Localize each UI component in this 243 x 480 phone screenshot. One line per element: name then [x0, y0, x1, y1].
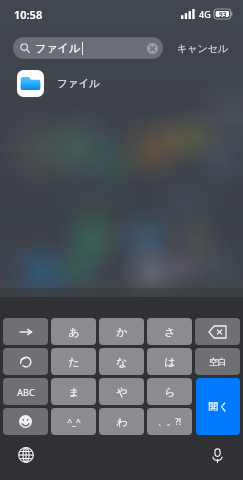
button[interactable]: や	[99, 378, 144, 405]
button[interactable]: Switch keyboard	[13, 442, 39, 468]
button[interactable]: ファイル	[13, 37, 163, 59]
staticText: 4G	[199, 8, 211, 20]
staticText: キャンセル	[177, 42, 229, 55]
staticText: か	[116, 325, 128, 339]
staticText: ファイル	[35, 41, 81, 55]
button[interactable]: さ	[147, 318, 192, 345]
button[interactable]: な	[99, 348, 144, 375]
staticText: ABC	[17, 386, 35, 398]
staticText: ファイル	[57, 77, 100, 90]
staticText: わ	[116, 415, 128, 429]
staticText: や	[116, 385, 128, 399]
button[interactable]: Voice input	[204, 442, 230, 468]
staticText: 開く	[208, 400, 229, 413]
button[interactable]: 、。?!	[147, 408, 192, 435]
button[interactable]: 開く	[196, 378, 240, 435]
button[interactable]: Emoji	[3, 408, 48, 435]
button[interactable]: あ	[51, 318, 96, 345]
staticText: さ	[164, 325, 176, 339]
button[interactable]: は	[147, 348, 192, 375]
staticText: 空白	[209, 356, 227, 367]
button[interactable]: わ	[99, 408, 144, 435]
staticText: な	[116, 355, 128, 369]
staticText: ^_^	[67, 416, 81, 428]
staticText: 10:58	[14, 7, 43, 22]
staticText: ま	[68, 385, 80, 399]
button[interactable]: ファイル	[0, 66, 243, 100]
button[interactable]: ま	[51, 378, 96, 405]
staticText: 、。?!	[158, 416, 181, 428]
staticText: ら	[164, 385, 176, 399]
staticText: た	[68, 355, 80, 369]
button[interactable]: ら	[147, 378, 192, 405]
button[interactable]: か	[99, 318, 144, 345]
button[interactable]: Clear text	[146, 42, 158, 54]
button[interactable]: ^_^	[51, 408, 96, 435]
button[interactable]: た	[51, 348, 96, 375]
button[interactable]: Next candidate	[3, 318, 48, 345]
button[interactable]: 空白	[195, 348, 240, 375]
staticText: 93	[219, 10, 227, 19]
button[interactable]: Undo	[3, 348, 48, 375]
staticText: あ	[68, 325, 80, 339]
button[interactable]: Delete	[195, 318, 240, 345]
button[interactable]: ABC	[3, 378, 48, 405]
staticText: は	[164, 355, 176, 369]
button[interactable]: キャンセル	[175, 38, 231, 59]
